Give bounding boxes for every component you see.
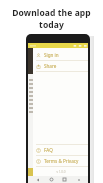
staticText: FAQ: [44, 147, 53, 153]
button[interactable]: Recent apps: [61, 176, 68, 183]
button[interactable]: Sign in: [33, 50, 88, 60]
staticText: Terms & Privacy: [44, 158, 79, 164]
button[interactable]: Back: [34, 176, 41, 183]
staticText: Share: [44, 63, 57, 69]
button[interactable]: Terms & Privacy: [33, 156, 88, 166]
button[interactable]: Share: [33, 61, 88, 71]
button[interactable]: Menu: [75, 176, 82, 183]
staticText: Download the app today: [0, 7, 103, 31]
staticText: v 1.0.0: [56, 170, 66, 174]
button[interactable]: Home: [48, 176, 55, 183]
button[interactable]: FAQ: [33, 145, 88, 155]
staticText: Sign in: [44, 52, 59, 58]
